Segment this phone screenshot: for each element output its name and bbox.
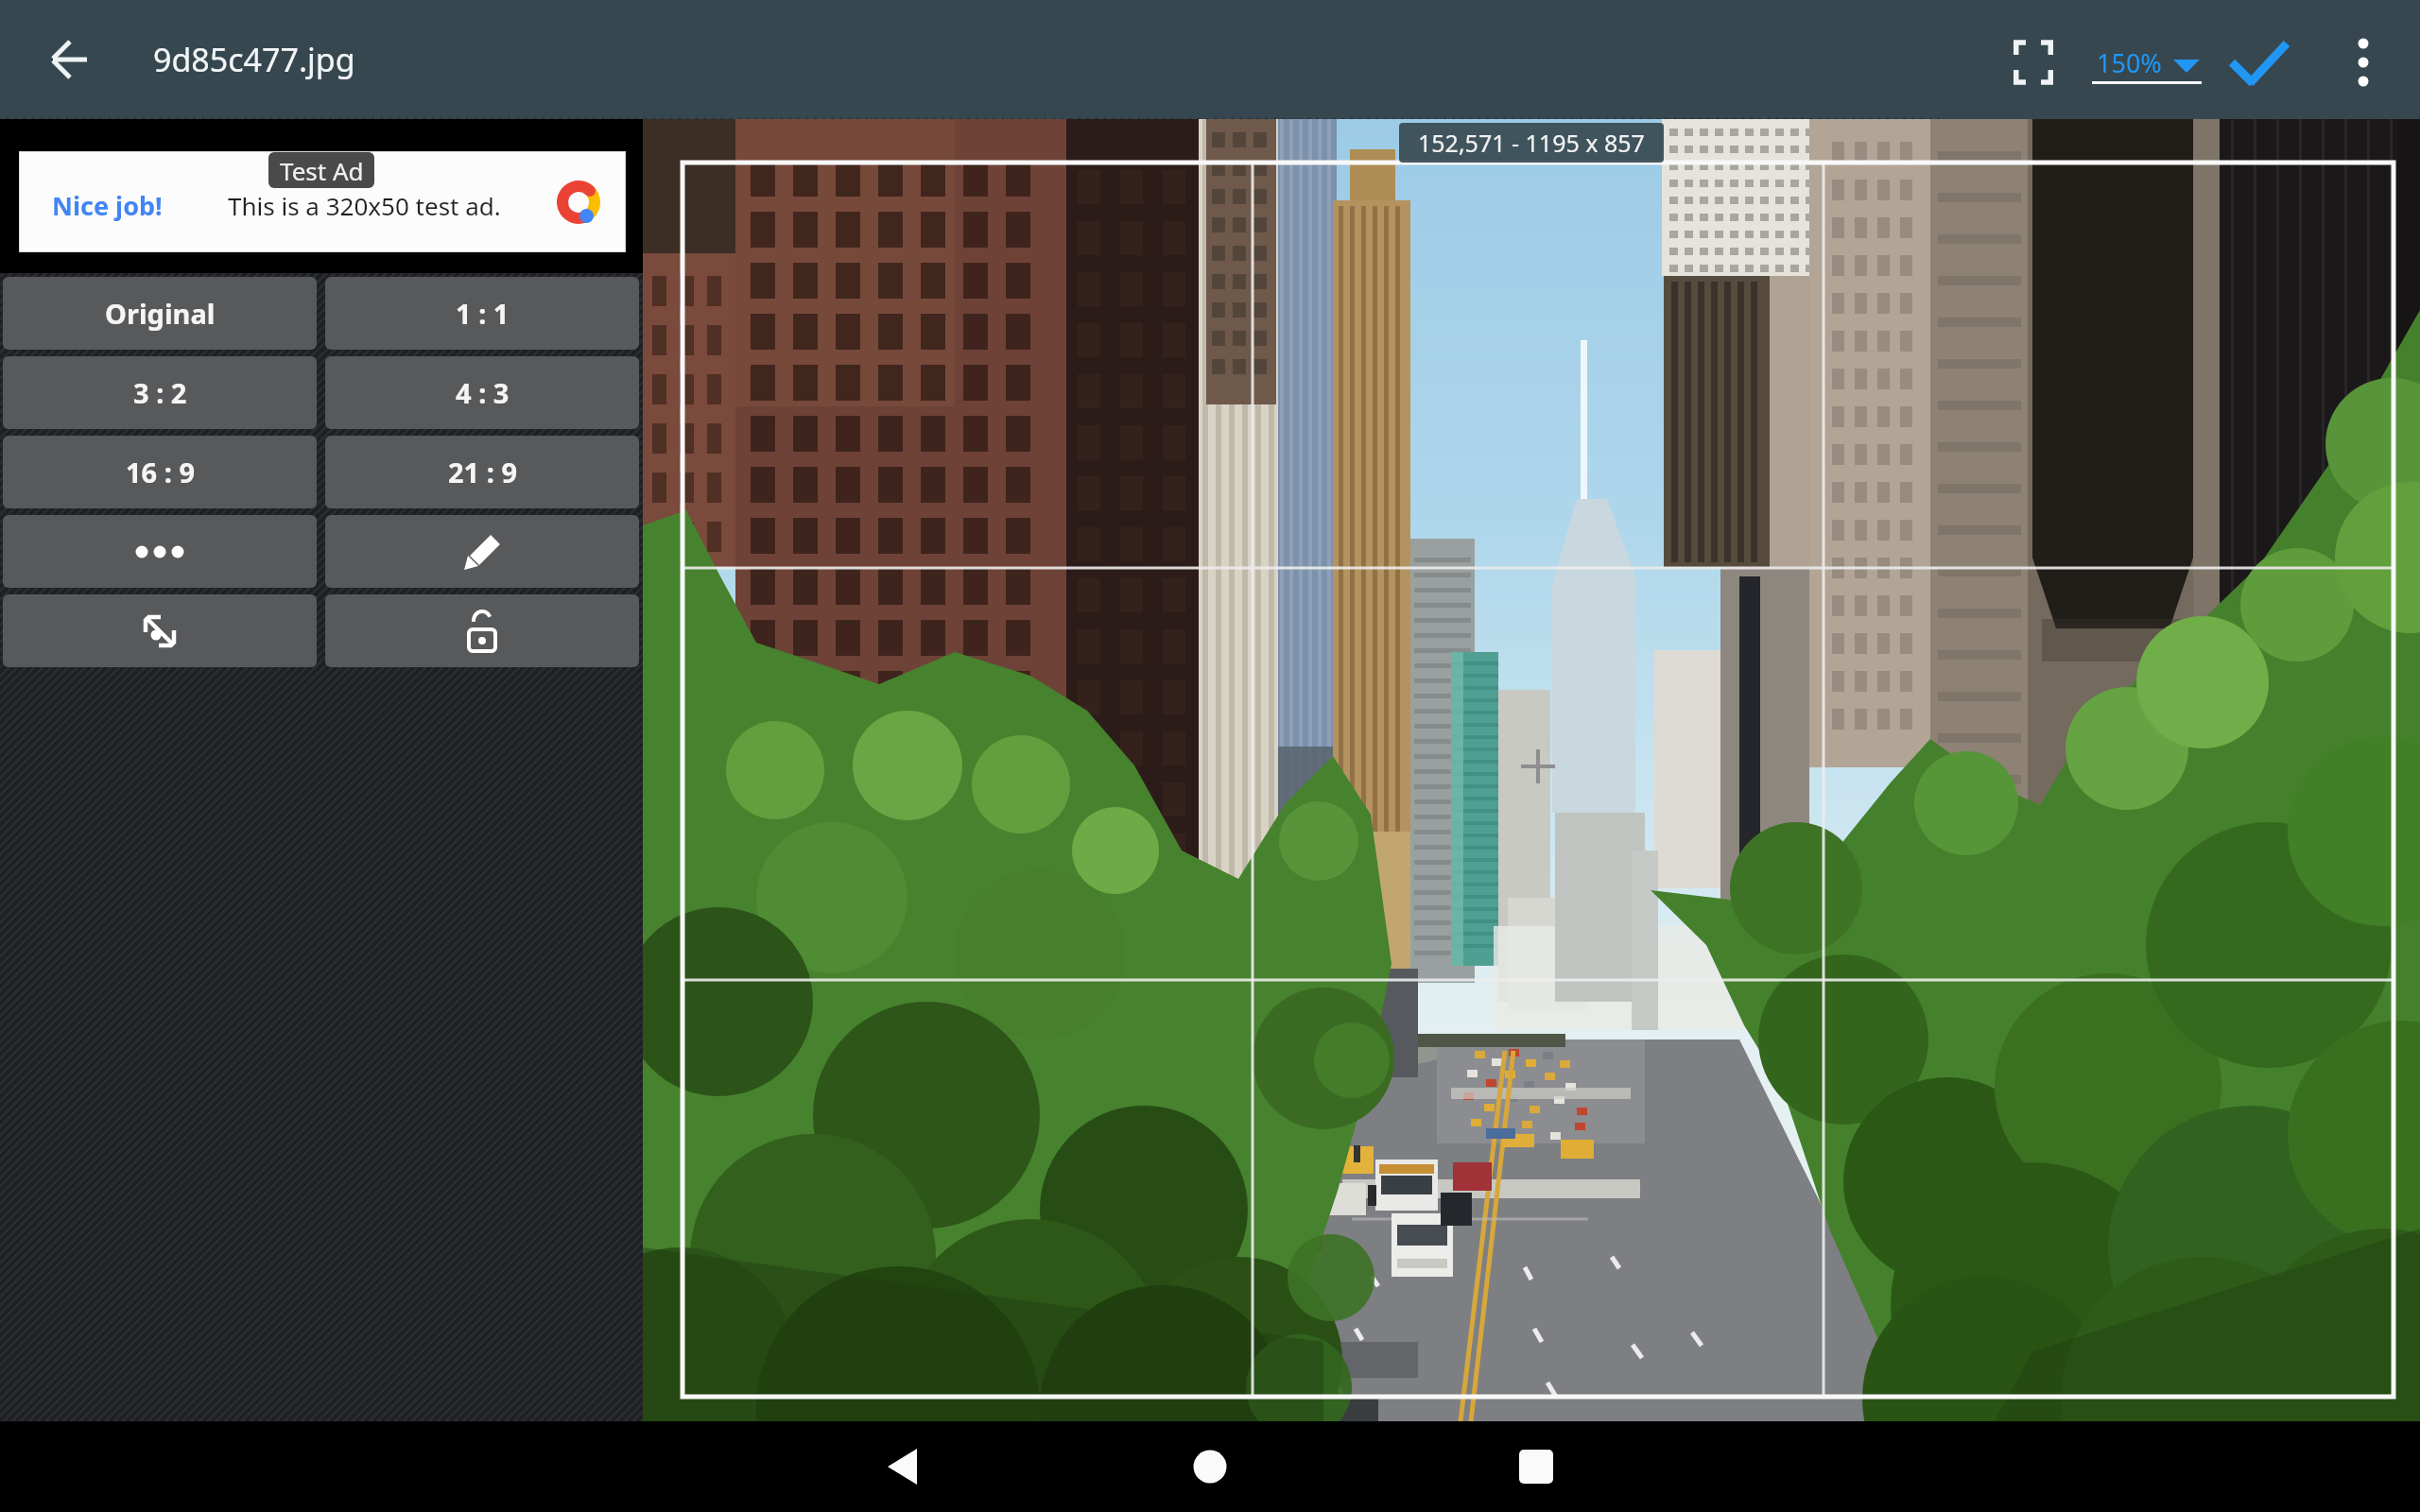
staticText: 1 : 1 (456, 295, 510, 332)
button[interactable]: 16 : 9 (3, 436, 317, 508)
button[interactable] (2223, 26, 2295, 98)
button[interactable]: Nice job! (19, 151, 626, 252)
button[interactable] (2084, 26, 2207, 98)
button[interactable] (856, 1431, 950, 1503)
button[interactable]: 4 : 3 (325, 356, 639, 429)
staticText: Original (105, 295, 216, 332)
button[interactable]: 1 : 1 (325, 277, 639, 350)
staticText: 16 : 9 (126, 454, 195, 490)
staticText: 21 : 9 (448, 454, 517, 490)
staticText: 4 : 3 (456, 374, 510, 411)
button[interactable] (2327, 26, 2399, 98)
button[interactable] (1163, 1431, 1257, 1503)
staticText: 150% (2097, 45, 2162, 80)
button[interactable] (34, 25, 106, 96)
staticText: 3 : 2 (133, 374, 187, 411)
button[interactable] (1996, 26, 2070, 98)
button[interactable] (3, 594, 317, 667)
button[interactable] (325, 594, 639, 667)
button[interactable]: 21 : 9 (325, 436, 639, 508)
button[interactable] (325, 515, 639, 588)
staticText: Test Ad (280, 154, 364, 187)
staticText: Nice job! (52, 188, 163, 223)
staticText: 9d85c477.jpg (153, 38, 355, 81)
button[interactable]: 3 : 2 (3, 356, 317, 429)
button[interactable] (1489, 1431, 1583, 1503)
staticText: 152,571 - 1195 x 857 (1418, 127, 1645, 159)
button[interactable]: Original (3, 277, 317, 350)
staticText: This is a 320x50 test ad. (228, 189, 501, 222)
button[interactable] (3, 515, 317, 588)
